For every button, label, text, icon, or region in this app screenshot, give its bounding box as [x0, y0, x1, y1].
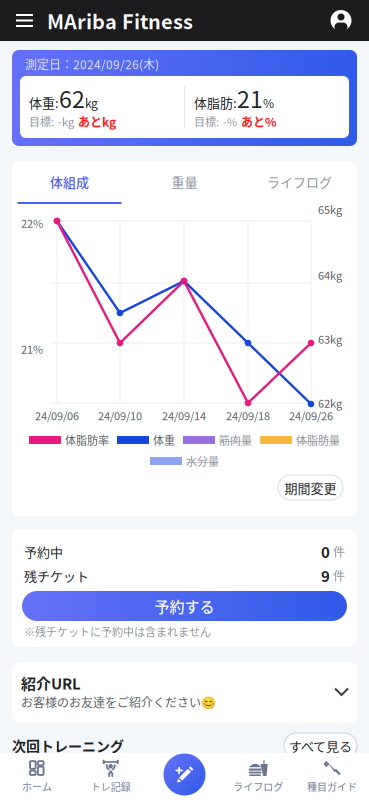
staticText: 9 [321, 565, 330, 586]
button[interactable]: 筋肉量 [183, 434, 252, 446]
staticText: -% [223, 113, 237, 129]
button[interactable]: ライフログ [242, 161, 357, 204]
staticText: 体組成 [50, 172, 89, 191]
staticText: 筋肉量 [219, 432, 252, 448]
button[interactable]: New record [162, 752, 206, 796]
staticText: ライフログ [233, 779, 283, 794]
button[interactable]: 体脂肪量 [260, 434, 340, 446]
staticText: 62kg [318, 395, 342, 411]
staticText: 24/09/26 [289, 407, 333, 423]
button[interactable]: 体組成 [12, 161, 127, 204]
staticText: 21% [21, 341, 43, 357]
staticText: すべて見る [289, 736, 352, 755]
button[interactable]: 紹介URL [12, 662, 357, 723]
button[interactable]: Account [321, 0, 361, 40]
button[interactable]: ライフログ [221, 753, 295, 800]
staticText: お客様のお友達をご紹介ください😊 [21, 693, 216, 711]
staticText: 目標: [194, 113, 219, 129]
staticText: あと% [241, 113, 277, 130]
staticText: 体脂肪: [194, 93, 237, 112]
staticText: 64kg [318, 267, 342, 283]
staticText: ホーム [22, 779, 52, 794]
staticText: -kg [58, 113, 74, 129]
staticText: 体重: [29, 93, 59, 112]
button[interactable]: すべて見る [284, 733, 357, 758]
staticText: 期間変更 [284, 478, 336, 497]
staticText: ※残チケットに予約中は含まれません [24, 623, 211, 639]
staticText: 件 [333, 567, 345, 584]
staticText: 65kg [318, 201, 342, 217]
button[interactable]: Menu [8, 3, 41, 38]
staticText: 62 [59, 81, 85, 115]
staticText: 体脂肪率 [65, 432, 109, 448]
button[interactable]: 体脂肪率 [29, 434, 109, 446]
staticText: 次回トレーニング [12, 735, 124, 756]
button[interactable]: 体重 [117, 434, 175, 446]
staticText: ライフログ [267, 172, 332, 191]
staticText: 予約中 [24, 542, 63, 561]
staticText: kg [85, 94, 98, 111]
staticText: 24/09/14 [162, 407, 206, 423]
staticText: 紹介URL [21, 672, 81, 694]
staticText: 24/09/18 [226, 407, 270, 423]
staticText: 残チケット [24, 566, 89, 585]
button[interactable]: 水分量 [150, 455, 219, 467]
button[interactable]: ホーム [0, 753, 74, 800]
staticText: 体脂肪量 [296, 432, 340, 448]
button[interactable]: 予約する [22, 591, 347, 621]
staticText: MAriba Fitness [47, 6, 193, 35]
staticText: あとkg [78, 113, 116, 130]
staticText: 21 [237, 81, 263, 115]
staticText: 目標: [29, 113, 54, 129]
button[interactable]: 種目ガイド [295, 753, 369, 800]
staticText: % [263, 94, 274, 111]
staticText: トレ記録 [91, 779, 131, 794]
staticText: 水分量 [186, 453, 219, 469]
staticText: 体重 [153, 432, 175, 448]
button[interactable]: 重量 [127, 161, 242, 204]
staticText: 24/09/06 [35, 407, 79, 423]
button[interactable]: 期間変更 [278, 475, 343, 500]
staticText: 件 [333, 543, 345, 560]
staticText: 63kg [318, 331, 342, 347]
button[interactable]: トレ記録 [74, 753, 148, 800]
staticText: 種目ガイド [307, 779, 357, 794]
staticText: 測定日：2024/09/26(木) [25, 55, 159, 73]
staticText: 重量 [171, 172, 197, 191]
staticText: 22% [21, 215, 43, 231]
staticText: 予約する [154, 595, 214, 617]
staticText: 24/09/10 [98, 407, 142, 423]
staticText: 0 [321, 541, 330, 562]
